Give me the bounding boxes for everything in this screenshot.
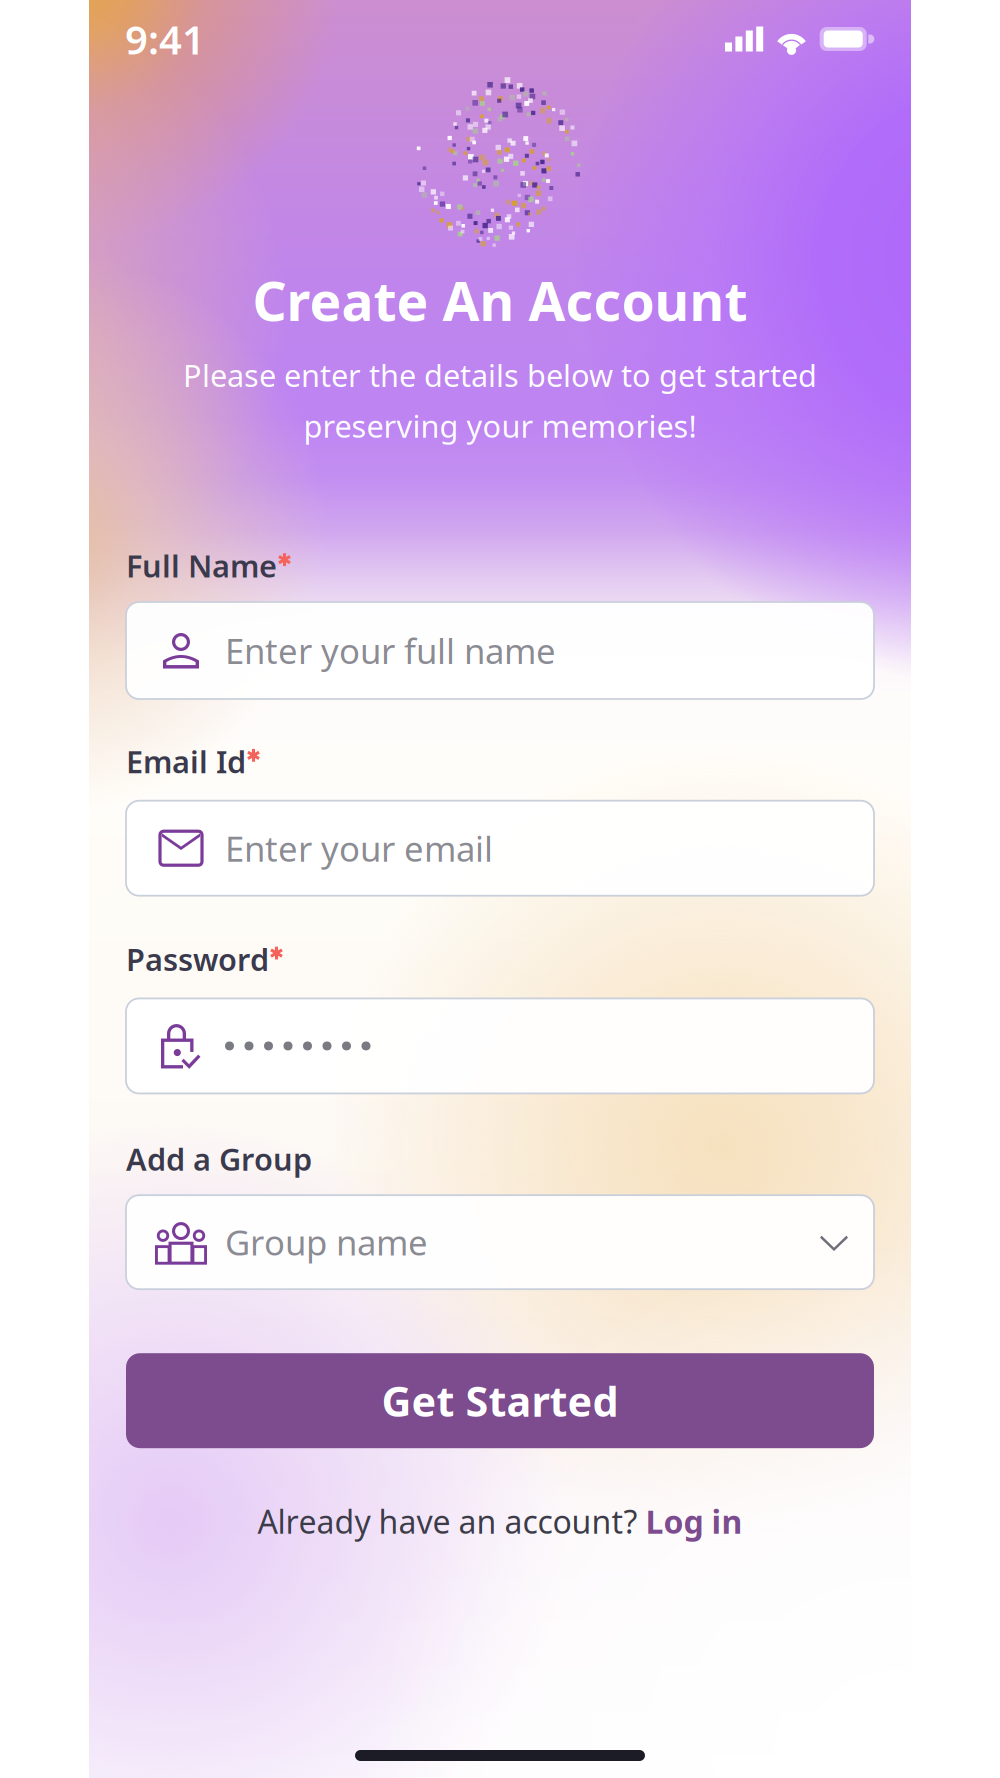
staticText: Get Started <box>381 1373 618 1428</box>
staticText: Create An Account <box>252 265 747 336</box>
button[interactable]: Already have an account? <box>126 1500 874 1543</box>
staticText: Enter your full name <box>225 627 556 673</box>
staticText: Log in <box>645 1500 742 1543</box>
staticText: Enter your email <box>225 825 493 871</box>
staticText: Password <box>126 939 269 979</box>
staticText: Please enter the details below to get st… <box>183 355 817 395</box>
staticText: Already have an account? <box>257 1500 645 1543</box>
staticText: Group name <box>225 1219 428 1265</box>
staticText: Add a Group <box>126 1138 312 1179</box>
button[interactable]: Get Started <box>126 1353 874 1448</box>
staticText: Full Name <box>126 545 277 586</box>
staticText: Email Id <box>126 741 246 782</box>
staticText: 9:41 <box>125 12 205 65</box>
staticText: preserving your memories! <box>303 405 696 446</box>
